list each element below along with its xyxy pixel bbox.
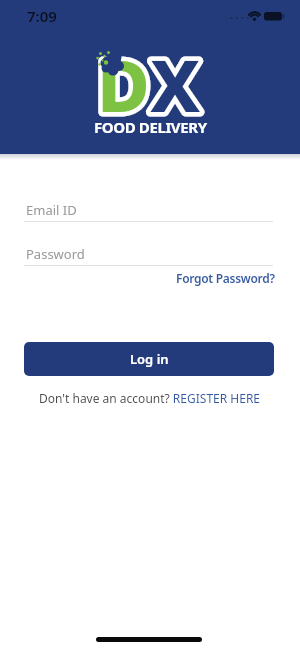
button[interactable]: Password	[24, 244, 273, 266]
button[interactable]: Log in	[24, 342, 274, 376]
staticText: Forgot Password?	[176, 270, 275, 286]
staticText: DX	[97, 35, 203, 133]
button[interactable]: Forgot Password?	[145, 270, 275, 288]
staticText: FOOD DELIVERY	[94, 117, 207, 137]
staticText: DX	[97, 35, 203, 133]
staticText: 7:09	[27, 6, 57, 26]
staticText: Email ID	[26, 201, 77, 219]
staticText: Don't have an account? REGISTER HERE	[39, 390, 261, 406]
staticText: Log in	[130, 350, 169, 368]
staticText: Password	[26, 245, 85, 263]
button[interactable]: Don't have an account? REGISTER HERE	[0, 390, 300, 408]
button[interactable]: Email ID	[24, 200, 273, 222]
